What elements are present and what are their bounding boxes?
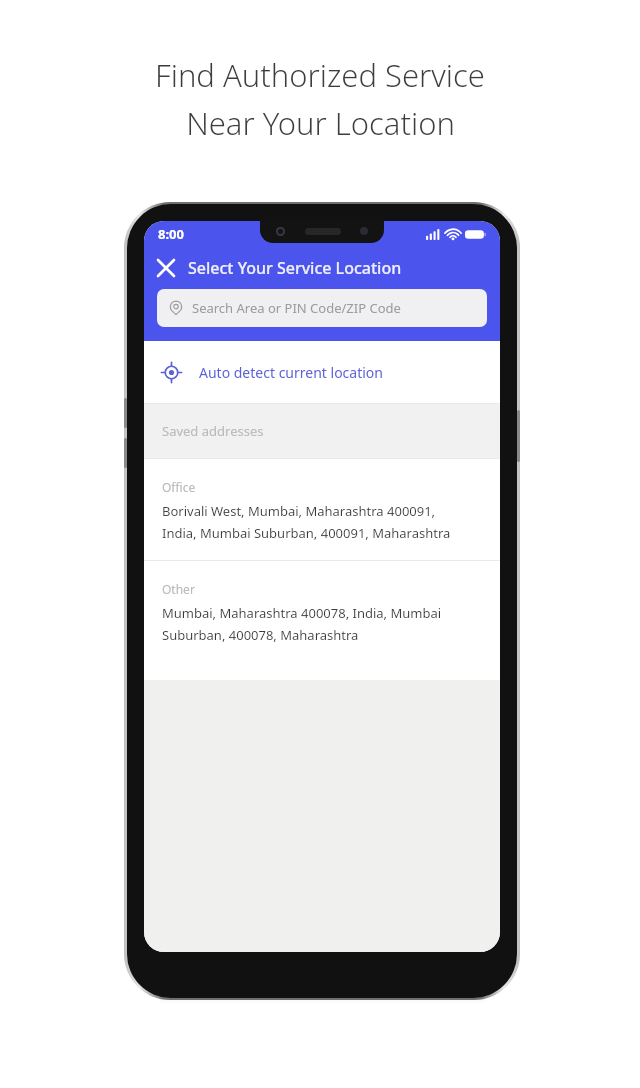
button[interactable]: Auto detect current location [144,341,500,403]
staticText: 8:00 [158,225,184,243]
staticText: Near Your Location [186,102,455,144]
staticText: Search Area or PIN Code/ZIP Code [192,299,401,317]
staticText: Other [162,581,195,597]
button[interactable]: Close [144,247,188,289]
staticText: Select Your Service Location [188,257,402,279]
button[interactable]: Other [144,561,500,662]
staticText: India, Mumbai Suburban, 400091, Maharash… [162,524,451,542]
staticText: Mumbai, Maharashtra 400078, India, Mumba… [162,604,442,622]
staticText: Find Authorized Service [155,54,485,96]
button[interactable]: Search Area or PIN Code/ZIP Code [157,289,487,327]
staticText: Suburban, 400078, Maharashtra [162,626,359,644]
staticText: Office [162,479,196,495]
staticText: Auto detect current location [199,363,383,382]
staticText: Saved addresses [162,422,264,440]
staticText: Borivali West, Mumbai, Maharashtra 40009… [162,502,436,520]
button[interactable]: Office [144,459,500,560]
